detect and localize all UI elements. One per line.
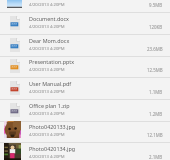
button[interactable]: Presentation.pptx [0,56,170,78]
staticText: 4/20/2013 4:20PM [29,111,65,117]
staticText: Photo0420134.jpg [29,145,76,152]
staticText: Office plan 1.zip [29,102,70,109]
staticText: 4/20/2013 4:20PM [29,46,65,52]
staticText: Photo0420133.jpg [29,123,76,130]
staticText: Dear Mom.docx [29,37,70,44]
staticText: 12.5MB [147,67,163,73]
staticText: 4/20/2013 4:20PM [29,2,65,8]
staticText: 4/20/2013 4:20PM [29,132,65,138]
staticText: 12.1MB [147,132,163,138]
button[interactable]: Dear Mom.docx [0,35,170,57]
staticText: 2.1MB [149,154,163,160]
button[interactable]: User Manual.pdf [0,78,170,100]
staticText: Document.docx [29,15,69,22]
button[interactable]: Photo0420133.jpg [0,121,170,143]
staticText: Presentation.pptx [29,58,75,65]
button[interactable]: Document.docx [0,13,170,35]
staticText: 4/20/2013 4:20PM [29,89,65,95]
staticText: 4/20/2013 4:20PM [29,67,65,73]
button[interactable]: Photo0420132.jpg [0,0,170,13]
staticText: 4/20/2013 4:20PM [29,24,65,30]
button[interactable]: Office plan 1.zip [0,100,170,122]
staticText: 23.6MB [147,46,163,52]
button[interactable]: Photo0420134.jpg [0,143,170,160]
staticText: 120KB [149,24,163,30]
staticText: 9.5MB [149,2,163,8]
staticText: User Manual.pdf [29,80,72,87]
staticText: 4/20/2013 4:20PM [29,154,65,160]
staticText: 1.2MB [149,111,163,117]
staticText: 1.1MB [149,89,163,95]
